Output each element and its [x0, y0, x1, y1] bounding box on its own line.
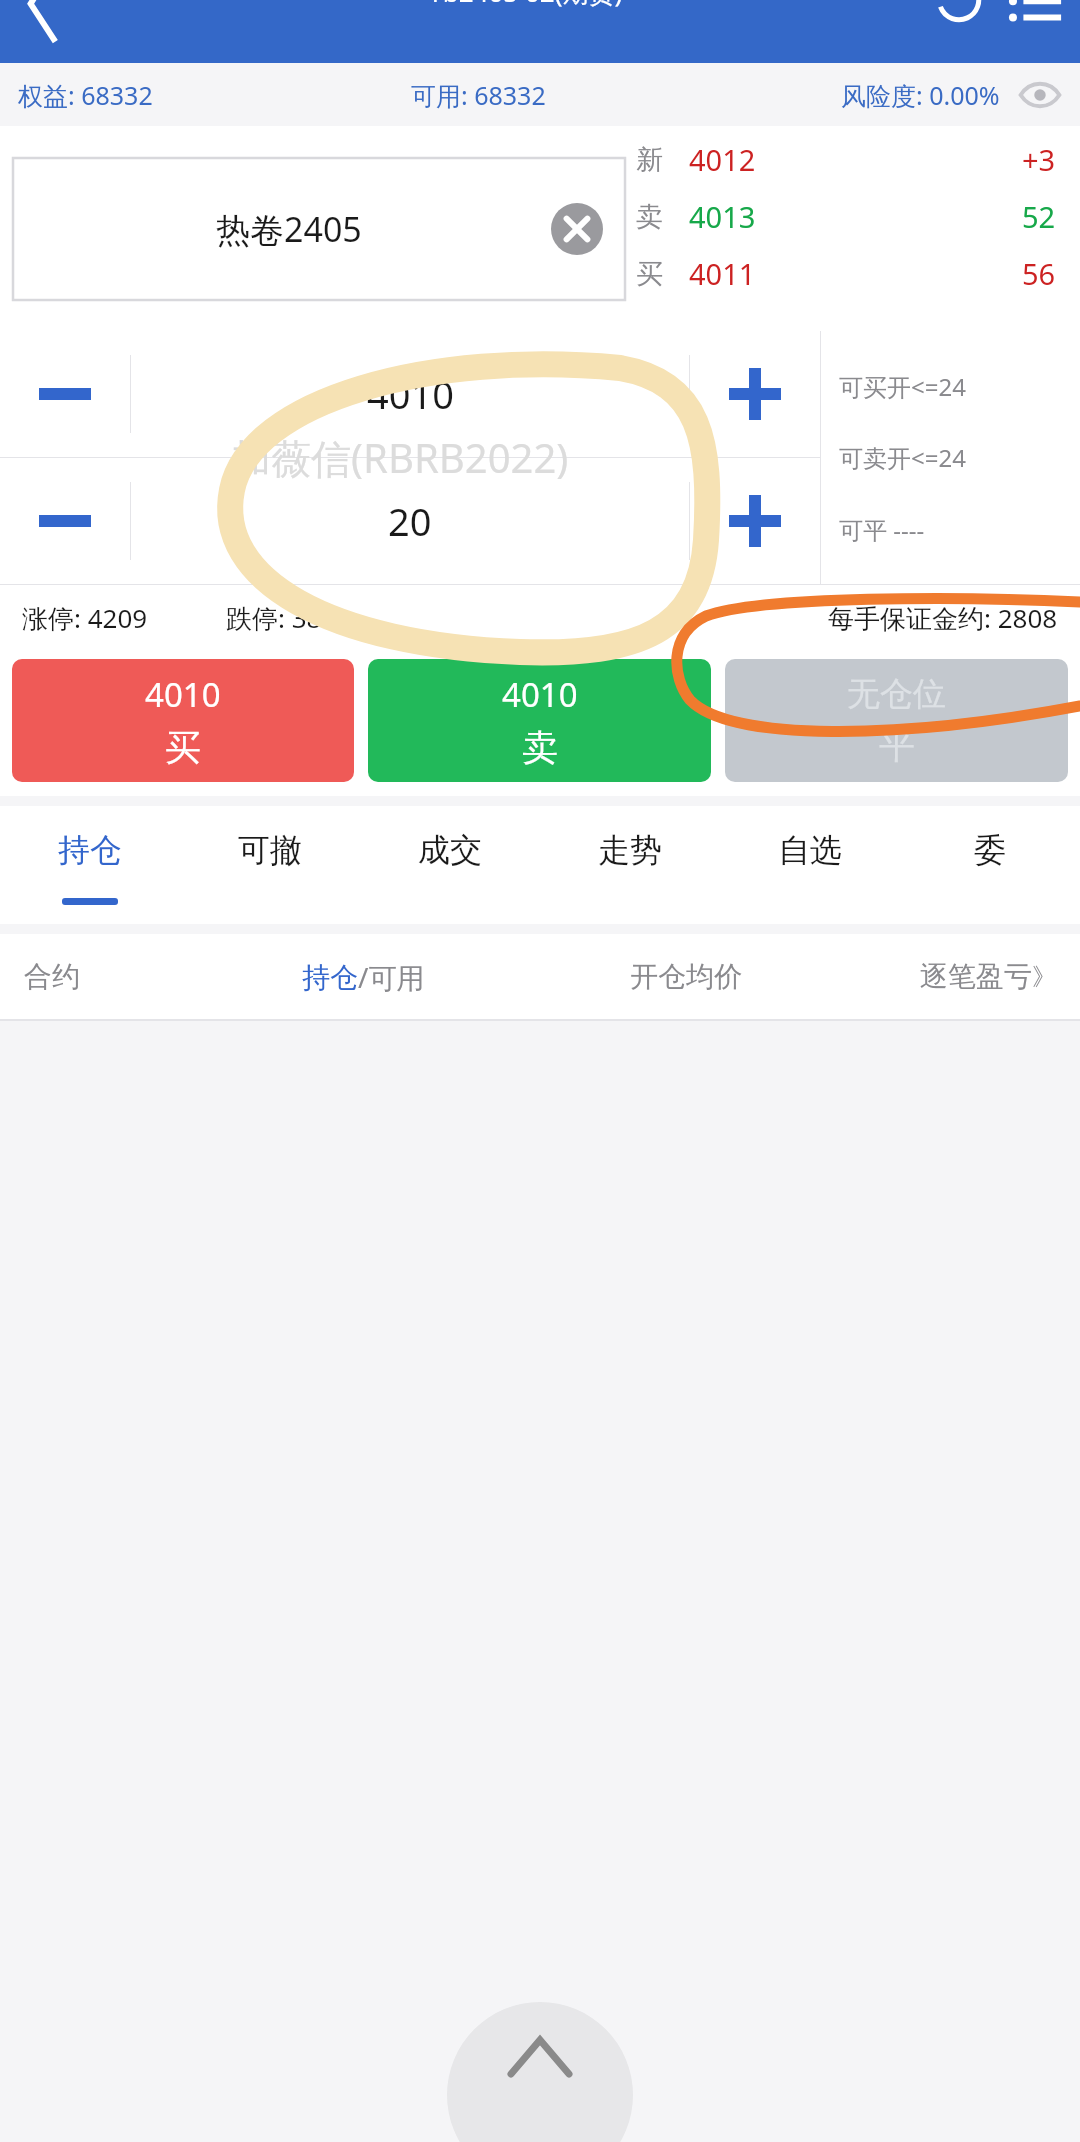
button[interactable]: 新 — [636, 140, 1056, 179]
button[interactable]: 热卷2405 — [13, 158, 625, 300]
staticText: 加薇信(RBRB2022) — [231, 430, 569, 485]
staticText: 走势 — [598, 830, 662, 870]
button[interactable]: Back — [14, 0, 78, 63]
button[interactable]: 可撤 — [180, 806, 360, 924]
staticText: 卖 — [636, 200, 663, 234]
staticText: 开仓均价 — [630, 959, 920, 994]
staticText: 成交 — [418, 830, 482, 870]
button[interactable]: 买 — [636, 254, 1056, 293]
staticText: 56 — [1022, 254, 1056, 293]
staticText: 》 — [1032, 962, 1056, 992]
staticText: 每手保证金约: 2808 — [828, 600, 1058, 636]
button[interactable]: 走势 — [540, 806, 720, 924]
button[interactable]: 自选 — [720, 806, 900, 924]
staticText: rb2405 02(期货) — [432, 0, 623, 10]
button[interactable]: rb2405 02(期货) — [432, 0, 649, 10]
staticText: 合约 — [24, 959, 302, 994]
staticText: 买 — [165, 725, 201, 770]
staticText: 无仓位 — [847, 673, 946, 715]
button[interactable]: Decrease — [0, 458, 130, 584]
staticText: 跌停: 3808 — [226, 600, 352, 636]
staticText: 热卷2405 — [216, 206, 362, 252]
button[interactable]: Scroll up — [447, 2002, 633, 2142]
staticText: /可用 — [358, 958, 425, 996]
staticText: 权益: 68332 — [18, 78, 411, 112]
staticText: 4013 — [689, 197, 756, 236]
button[interactable]: Refresh — [930, 0, 988, 58]
button[interactable]: 4010 — [12, 659, 354, 782]
button[interactable]: 委 — [900, 806, 1080, 924]
staticText: 4012 — [689, 140, 756, 179]
staticText: 涨停: 4209 — [22, 600, 148, 636]
staticText: 可用: 68332 — [411, 78, 841, 112]
button[interactable]: Increase — [690, 458, 820, 584]
staticText: 4010 — [502, 672, 578, 717]
staticText: 自选 — [778, 830, 842, 870]
staticText: 4011 — [689, 254, 756, 293]
staticText: 持仓 — [302, 960, 358, 995]
staticText: 逐笔盈亏 — [920, 959, 1032, 994]
staticText: +3 — [1022, 140, 1056, 179]
staticText: 卖 — [522, 725, 558, 770]
staticText: 买 — [636, 257, 663, 291]
button[interactable]: 成交 — [360, 806, 540, 924]
staticText: 4010 — [367, 368, 454, 420]
staticText: 可卖开<=24 — [839, 441, 966, 474]
button[interactable]: Toggle visibility — [1018, 73, 1062, 117]
button[interactable]: Decrease — [0, 331, 130, 457]
button[interactable]: 无仓位 — [725, 659, 1068, 782]
staticText: 20 — [388, 495, 432, 547]
button[interactable]: Clear — [551, 203, 603, 255]
staticText: 可平 ---- — [839, 513, 925, 546]
button[interactable]: 20 — [131, 458, 689, 584]
button[interactable]: 持仓 — [0, 806, 180, 924]
staticText: 可买开<=24 — [839, 370, 966, 403]
staticText: 平 — [879, 723, 915, 768]
staticText: 持仓 — [58, 830, 122, 870]
button[interactable]: Increase — [690, 331, 820, 457]
staticText: 可撤 — [238, 830, 302, 870]
button[interactable]: 4010 — [131, 331, 689, 457]
staticText: 52 — [1022, 197, 1056, 236]
staticText: 新 — [636, 143, 663, 177]
button[interactable]: Menu list — [1006, 0, 1064, 58]
staticText: 4010 — [145, 672, 221, 717]
staticText: 委 — [974, 830, 1006, 870]
button[interactable]: 4010 — [368, 659, 711, 782]
staticText: 风险度: 0.00% — [841, 78, 1000, 112]
button[interactable]: 卖 — [636, 197, 1056, 236]
